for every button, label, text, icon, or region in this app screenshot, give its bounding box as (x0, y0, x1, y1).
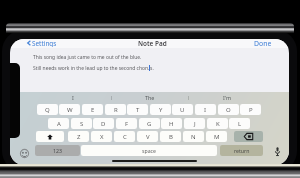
staticText: S (80, 120, 84, 128)
button[interactable]: W (59, 104, 80, 115)
button[interactable]: U (172, 104, 193, 115)
button[interactable]: space (81, 145, 217, 156)
staticText: K (216, 120, 220, 128)
staticText: F (125, 120, 129, 128)
staticText: L (238, 120, 242, 128)
staticText: W (67, 106, 73, 114)
button[interactable]: I (34, 92, 111, 103)
button[interactable]: V (137, 131, 158, 142)
button[interactable]: L (229, 118, 250, 129)
staticText: Note Pad (138, 39, 167, 48)
staticText: This song idea just came to me out of th… (33, 54, 142, 61)
button[interactable]: H (161, 118, 182, 129)
staticText: Q (45, 106, 50, 114)
button[interactable]: Settings (27, 39, 57, 47)
button[interactable]: T (127, 104, 148, 115)
staticText: T (136, 106, 140, 114)
button[interactable]: 123 (35, 145, 80, 156)
staticText: M (214, 133, 220, 141)
button[interactable]: Shift (36, 131, 64, 142)
button[interactable]: X (91, 131, 112, 142)
staticText: return (234, 147, 250, 154)
button[interactable]: D (93, 118, 114, 129)
staticText: U (180, 106, 185, 114)
button[interactable]: N (183, 131, 204, 142)
button[interactable]: I (195, 104, 216, 115)
staticText: Z (77, 133, 81, 141)
staticText: X (100, 133, 104, 141)
button[interactable]: F (116, 118, 137, 129)
staticText: G (147, 120, 152, 128)
staticText: E (91, 106, 95, 114)
staticText: H (169, 120, 174, 128)
button[interactable]: Q (37, 104, 58, 115)
staticText: I (72, 94, 74, 101)
staticText: Y (159, 106, 163, 114)
staticText: The (145, 94, 155, 101)
button[interactable]: A (48, 118, 69, 129)
button[interactable]: I'm (188, 92, 265, 103)
staticText: Done (254, 39, 272, 47)
button[interactable]: Dictate (272, 146, 282, 157)
button[interactable]: M (206, 131, 227, 142)
button[interactable]: G (139, 118, 160, 129)
button[interactable]: The (111, 92, 188, 103)
staticText: O (226, 106, 231, 114)
button[interactable]: Backspace (234, 131, 263, 142)
button[interactable]: C (114, 131, 135, 142)
staticText: Settings (32, 39, 57, 47)
staticText: J (194, 120, 196, 128)
button[interactable]: Done (254, 39, 272, 47)
staticText: V (146, 133, 150, 141)
button[interactable]: R (105, 104, 126, 115)
staticText: P (249, 106, 253, 114)
button[interactable]: Emoji (20, 149, 29, 158)
button[interactable]: E (82, 104, 103, 115)
button[interactable]: B (160, 131, 181, 142)
staticText: I (204, 106, 207, 114)
button[interactable]: S (71, 118, 92, 129)
button[interactable]: Y (150, 104, 171, 115)
staticText: B (169, 133, 173, 141)
button[interactable]: Z (68, 131, 89, 142)
button[interactable]: J (184, 118, 205, 129)
button[interactable]: K (207, 118, 228, 129)
button[interactable]: P (240, 104, 261, 115)
staticText: space (142, 147, 157, 154)
staticText: A (57, 120, 61, 128)
button[interactable]: O (218, 104, 239, 115)
staticText: D (101, 120, 106, 128)
staticText: 123 (53, 147, 62, 154)
staticText: Still needs work in the lead up to the s… (33, 65, 154, 72)
staticText: N (191, 133, 196, 141)
button[interactable]: return (220, 145, 263, 156)
staticText: I'm (223, 94, 231, 101)
staticText: R (114, 106, 118, 114)
staticText: C (123, 133, 127, 141)
